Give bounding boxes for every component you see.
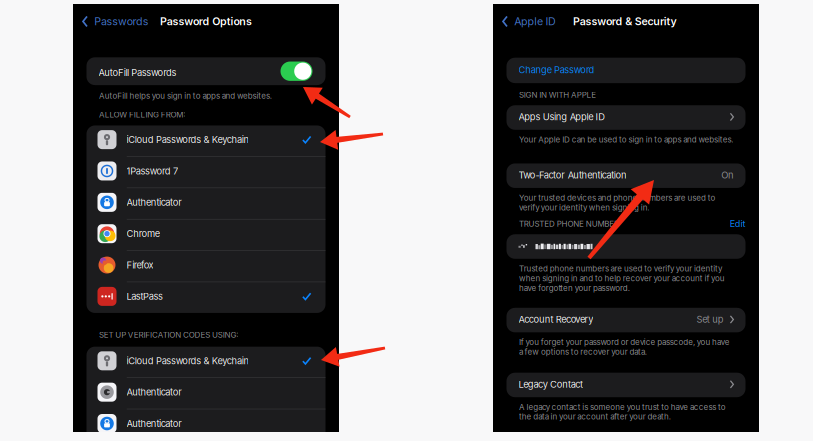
staticText: Authenticator xyxy=(126,418,182,429)
staticText: Your Apple ID can be used to sign in to … xyxy=(519,135,733,144)
staticText: Authenticator xyxy=(126,386,182,398)
button[interactable]: Authenticator xyxy=(86,378,325,409)
staticText: Passwords xyxy=(94,15,149,28)
button[interactable]: AutoFill Passwords xyxy=(86,57,325,85)
staticText: Apple ID xyxy=(514,15,556,28)
staticText: Two-Factor Authentication xyxy=(518,169,627,181)
staticText: Password & Security xyxy=(573,15,676,28)
staticText: Change Password xyxy=(518,64,595,75)
staticText: SET UP VERIFICATION CODES USING: xyxy=(99,330,238,340)
button[interactable]: Apple ID xyxy=(494,9,564,34)
staticText: Password Options xyxy=(160,15,252,28)
button[interactable]: Account Recovery xyxy=(506,308,745,332)
staticText: iCloud Passwords & Keychain xyxy=(126,355,249,366)
button[interactable]: Authenticator xyxy=(86,188,325,219)
staticText: AutoFill Passwords xyxy=(98,67,177,78)
button[interactable]: Firefox xyxy=(86,251,325,282)
staticText: SIGN IN WITH APPLE xyxy=(519,90,596,100)
button[interactable]: iCloud Passwords & Keychain xyxy=(86,125,325,156)
staticText: ALLOW FILLING FROM: xyxy=(99,110,185,119)
staticText: TRUSTED PHONE NUMBER xyxy=(519,219,619,229)
staticText: Trusted phone numbers are used to verify… xyxy=(519,264,725,293)
staticText: Your trusted devices and phone numbers a… xyxy=(519,193,715,212)
button[interactable]: Chrome xyxy=(86,219,325,250)
staticText: Authenticator xyxy=(126,197,182,208)
button[interactable]: Edit xyxy=(730,218,745,229)
staticText: Chrome xyxy=(126,228,160,239)
staticText: A legacy contact is someone you trust to… xyxy=(519,402,726,422)
staticText: Legacy Contact xyxy=(518,379,583,390)
staticText: 1Password 7 xyxy=(126,165,178,177)
button[interactable]: Legacy Contact xyxy=(506,373,745,397)
button[interactable]: Two-Factor Authentication xyxy=(506,163,745,188)
button[interactable]: Change Password xyxy=(506,58,745,83)
staticText: iCloud Passwords & Keychain xyxy=(126,134,249,145)
staticText: Edit xyxy=(730,218,745,229)
button[interactable]: LastPass xyxy=(86,282,325,313)
staticText: LastPass xyxy=(126,291,163,302)
button[interactable]: Apps Using Apple ID xyxy=(506,105,745,130)
button[interactable]: Passwords xyxy=(74,9,157,34)
button[interactable]: 1Password 7 xyxy=(86,157,325,188)
staticText: Apps Using Apple ID xyxy=(518,111,605,123)
staticText: On xyxy=(721,169,734,181)
staticText: Set up xyxy=(696,314,724,325)
button[interactable]: Authenticator xyxy=(86,409,325,440)
staticText: AutoFill helps you sign in to apps and w… xyxy=(99,91,272,101)
staticText: If you forget your password or device pa… xyxy=(519,337,730,357)
staticText: Account Recovery xyxy=(518,314,593,325)
button[interactable]: iCloud Passwords & Keychain xyxy=(86,347,325,377)
staticText: Firefox xyxy=(126,259,153,271)
